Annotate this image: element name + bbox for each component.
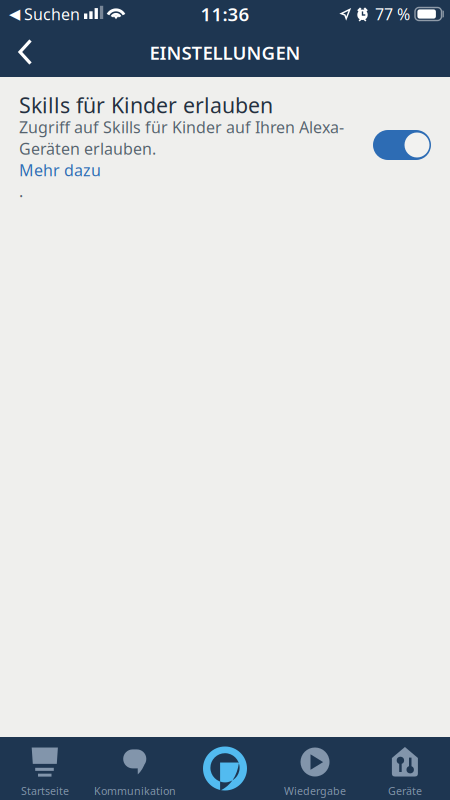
staticText: Geräte — [388, 784, 422, 798]
staticText: EINSTELLUNGEN — [149, 40, 300, 65]
button[interactable]: Kommunikation — [90, 737, 180, 800]
staticText: Zugriff auf Skills für Kinder auf Ihren … — [19, 116, 344, 138]
button[interactable]: Skills für Kinder erlauben — [373, 94, 431, 160]
staticText: Suchen — [20, 3, 80, 25]
button[interactable]: Alexa — [180, 737, 270, 800]
button[interactable]: Mehr dazu — [19, 159, 101, 181]
staticText: Skills für Kinder erlauben — [19, 91, 273, 119]
button[interactable]: Zurück — [0, 29, 46, 75]
staticText: Wiedergabe — [284, 784, 346, 798]
button[interactable]: Wiedergabe — [270, 737, 360, 800]
staticText: Geräten erlauben. — [19, 138, 156, 159]
staticText: 11:36 — [200, 2, 249, 26]
staticText: Mehr dazu — [19, 159, 101, 181]
staticText: . — [19, 180, 23, 202]
staticText: Kommunikation — [94, 784, 176, 798]
button[interactable]: Startseite — [0, 737, 90, 800]
staticText: ◀ — [9, 6, 20, 22]
staticText: Startseite — [21, 784, 69, 798]
button[interactable]: Geräte — [360, 737, 450, 800]
staticText: 77 % — [375, 3, 410, 25]
